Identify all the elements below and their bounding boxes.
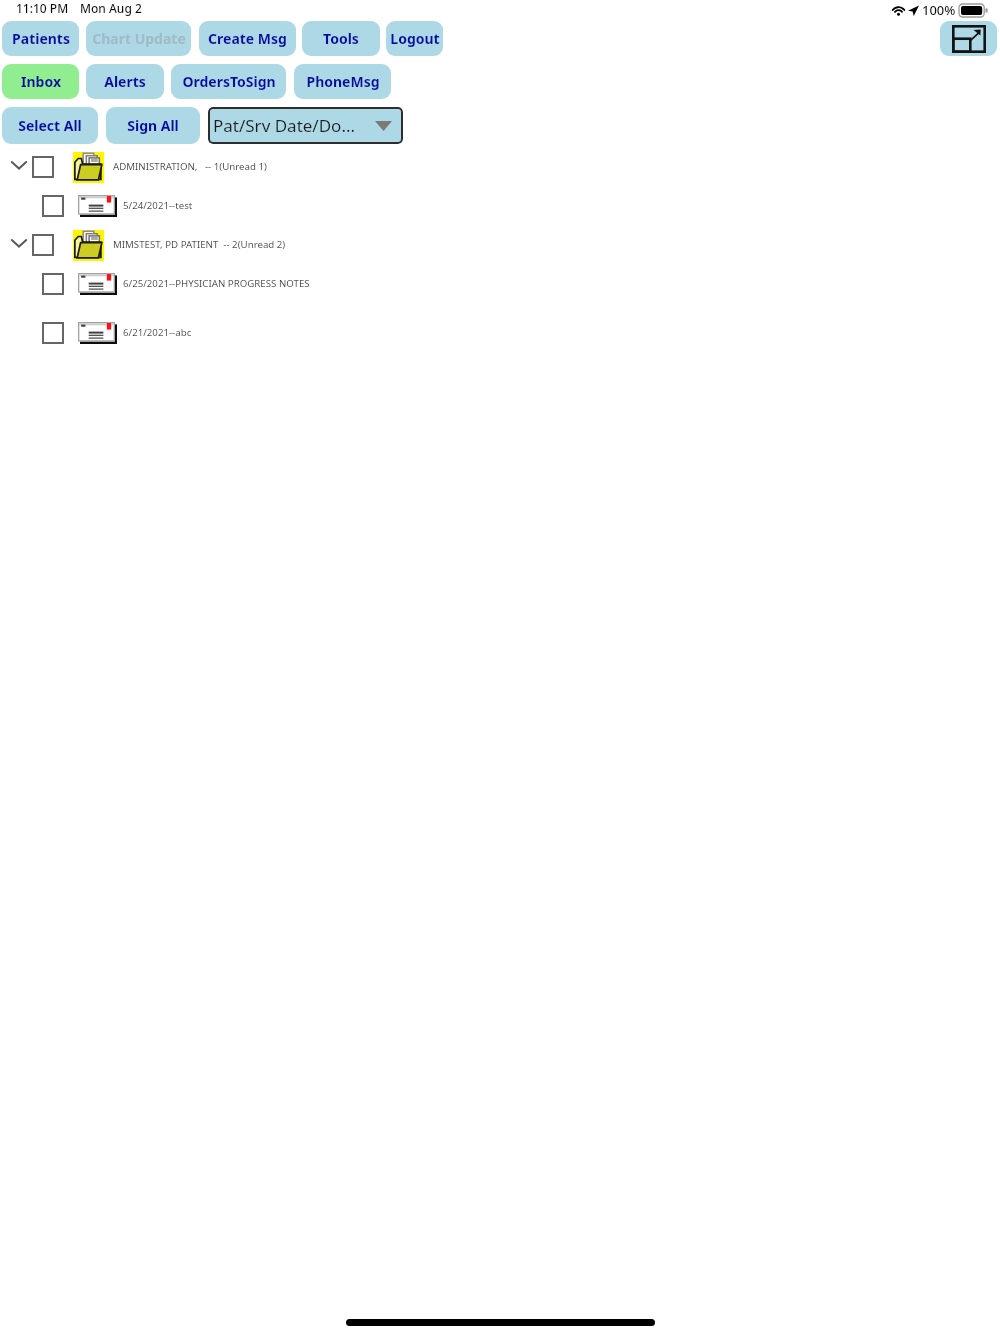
staticText: Chart Update: [92, 29, 186, 48]
staticText: MIMSTEST, PD PATIENT -- 2(Unread 2): [113, 238, 286, 251]
staticText: ADMINISTRATION, -- 1(Unread 1): [113, 160, 267, 173]
button[interactable]: Select item: [0, 265, 1000, 304]
button[interactable]: Collapse group: [0, 226, 1000, 265]
button[interactable]: Select item: [0, 187, 1000, 226]
staticText: Pat/Srv Date/Do...: [213, 114, 356, 137]
button[interactable]: Collapse group: [0, 148, 1000, 187]
button[interactable]: Sign All: [106, 107, 200, 144]
button[interactable]: PhoneMsg: [294, 64, 391, 99]
button[interactable]: Alerts: [86, 64, 164, 99]
button[interactable]: Logout: [386, 21, 443, 56]
staticText: Logout: [390, 29, 440, 48]
button[interactable]: Select item: [0, 314, 1000, 353]
staticText: Patients: [12, 29, 70, 48]
staticText: 5/24/2021--test: [123, 199, 193, 212]
button[interactable]: Patients: [2, 21, 79, 56]
button[interactable]: Full screen: [940, 21, 997, 56]
staticText: PhoneMsg: [306, 72, 380, 91]
button[interactable]: Select item: [42, 195, 64, 217]
staticText: OrdersToSign: [182, 72, 276, 91]
button[interactable]: Select item: [42, 322, 64, 344]
button[interactable]: Chart Update: [86, 21, 191, 56]
staticText: 6/25/2021--PHYSICIAN PROGRESS NOTES: [123, 277, 310, 290]
button[interactable]: Pat/Srv Date/Do...: [208, 107, 403, 144]
button[interactable]: Create Msg: [199, 21, 296, 56]
button[interactable]: Tools: [302, 21, 380, 56]
staticText: Create Msg: [208, 29, 287, 48]
button[interactable]: Select item: [32, 234, 54, 256]
staticText: Sign All: [127, 116, 179, 135]
button[interactable]: Inbox: [2, 64, 79, 99]
staticText: Mon Aug 2: [80, 0, 142, 16]
button[interactable]: Select All: [2, 107, 98, 144]
button[interactable]: Select item: [32, 156, 54, 178]
staticText: Tools: [323, 29, 359, 48]
staticText: 6/21/2021--abc: [123, 326, 192, 339]
staticText: Select All: [18, 116, 82, 135]
staticText: 11:10 PM: [16, 0, 69, 16]
button[interactable]: Collapse group: [9, 234, 29, 252]
button[interactable]: OrdersToSign: [171, 64, 286, 99]
staticText: Inbox: [21, 72, 61, 91]
button[interactable]: Collapse group: [9, 156, 29, 174]
button[interactable]: Select item: [42, 273, 64, 295]
staticText: Alerts: [104, 72, 146, 91]
staticText: 100%: [922, 1, 956, 19]
